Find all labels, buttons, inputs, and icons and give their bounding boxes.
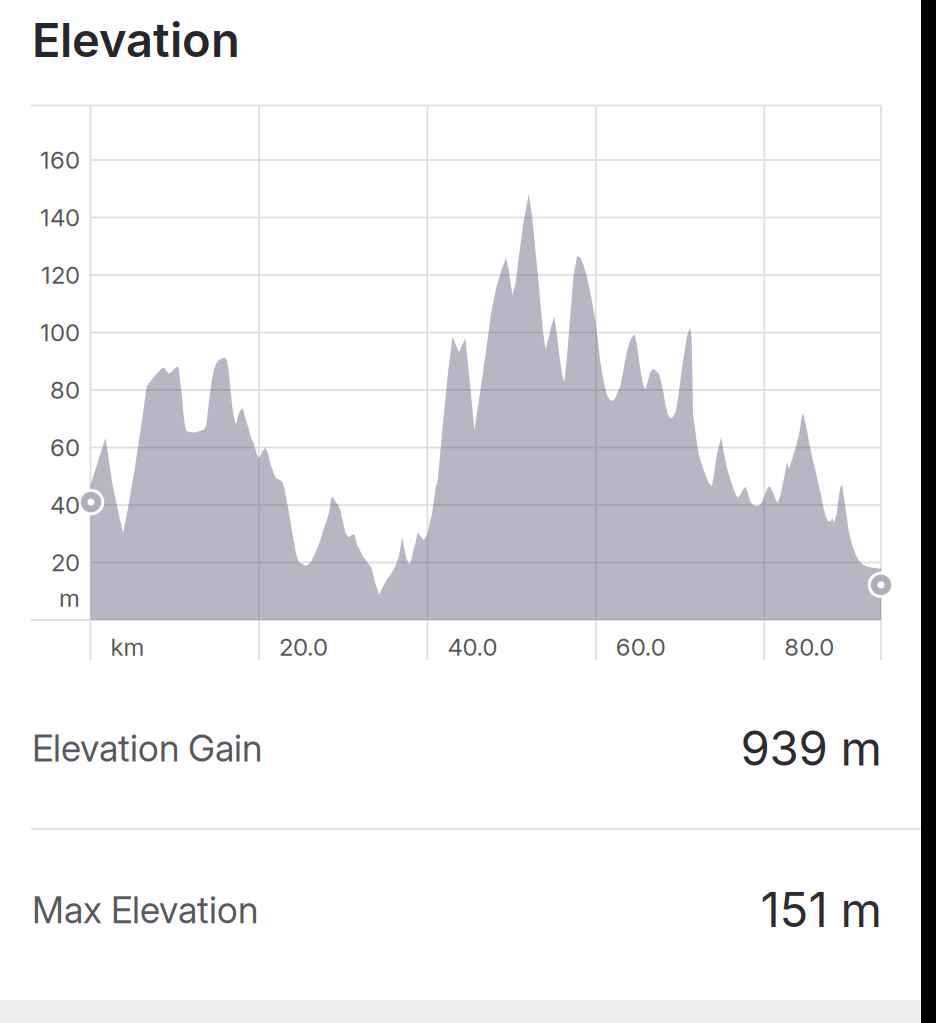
- staticText: 160: [40, 145, 80, 174]
- staticText: 20: [51, 548, 80, 577]
- staticText: km: [110, 632, 144, 661]
- staticText: 20.0: [279, 632, 328, 661]
- staticText: Elevation Gain: [32, 726, 262, 770]
- staticText: m: [59, 583, 80, 612]
- staticText: 140: [40, 203, 80, 232]
- staticText: 40.0: [447, 632, 497, 661]
- staticText: 80.0: [784, 632, 834, 661]
- button[interactable]: Max Elevation: [0, 830, 921, 990]
- staticText: 40: [50, 490, 80, 519]
- staticText: 60: [50, 433, 80, 462]
- staticText: 151 m: [760, 881, 881, 938]
- staticText: 939 m: [740, 720, 881, 777]
- staticText: Elevation: [32, 11, 240, 68]
- staticText: 60.0: [616, 632, 666, 661]
- button[interactable]: Elevation Gain: [0, 668, 921, 828]
- staticText: Max Elevation: [32, 888, 258, 932]
- staticText: 120: [41, 260, 80, 289]
- staticText: 100: [40, 318, 80, 347]
- staticText: 80: [50, 375, 80, 404]
